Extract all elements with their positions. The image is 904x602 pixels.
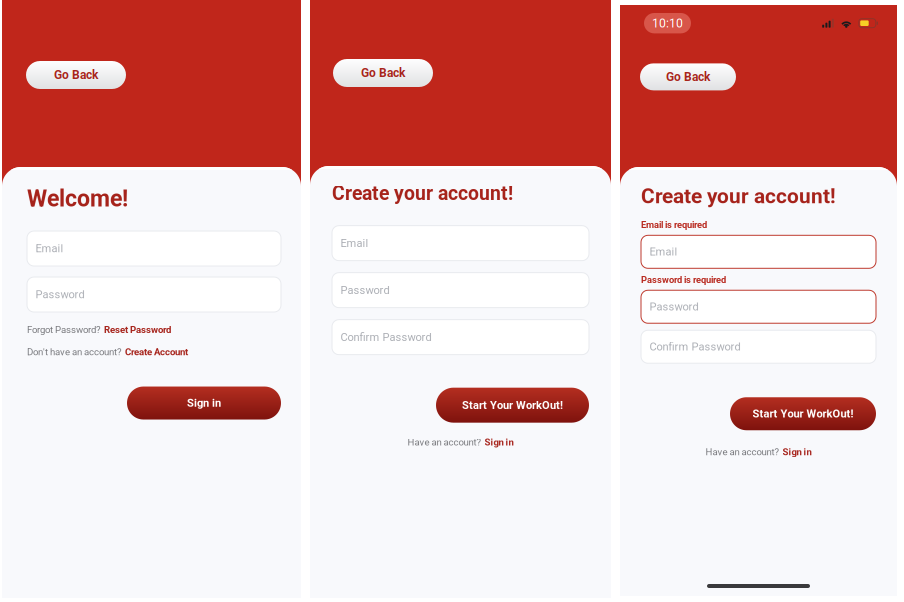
- staticText: Email: [341, 237, 369, 250]
- staticText: Password is required: [641, 274, 726, 285]
- button[interactable]: Go Back: [26, 61, 126, 89]
- staticText: Start Your WorkOut!: [752, 407, 853, 420]
- button[interactable]: Create Account: [125, 346, 188, 358]
- button[interactable]: Sign in: [782, 446, 811, 457]
- staticText: Create your account!: [641, 184, 836, 208]
- staticText: Create Account: [125, 346, 188, 358]
- staticText: Password: [341, 284, 390, 297]
- staticText: Email: [36, 242, 64, 255]
- button[interactable]: Go Back: [333, 59, 433, 87]
- staticText: Sign in: [782, 446, 811, 457]
- staticText: 10:10: [652, 16, 683, 30]
- button[interactable]: Go Back: [640, 63, 736, 90]
- staticText: Have an account?: [705, 446, 779, 457]
- staticText: Password: [36, 288, 85, 301]
- button[interactable]: Start Your WorkOut!: [730, 397, 876, 430]
- button[interactable]: Reset Password: [104, 324, 171, 335]
- staticText: Start Your WorkOut!: [462, 399, 563, 412]
- staticText: Create your account!: [332, 182, 513, 205]
- staticText: Sign in: [187, 396, 221, 409]
- staticText: Go Back: [54, 68, 98, 82]
- staticText: Have an account?: [407, 437, 481, 448]
- staticText: Email is required: [641, 219, 707, 230]
- staticText: Confirm Password: [341, 331, 432, 344]
- button[interactable]: Sign in: [484, 437, 513, 448]
- button[interactable]: Start Your WorkOut!: [436, 388, 589, 423]
- staticText: Reset Password: [104, 324, 171, 335]
- staticText: Go Back: [666, 70, 710, 84]
- staticText: Welcome!: [27, 185, 128, 212]
- button[interactable]: Sign in: [127, 386, 281, 419]
- staticText: Forgot Password?: [27, 324, 101, 335]
- staticText: Confirm Password: [650, 340, 741, 353]
- staticText: Password: [650, 300, 699, 313]
- staticText: Sign in: [484, 437, 513, 448]
- staticText: Go Back: [361, 66, 405, 80]
- staticText: Don't have an account?: [27, 346, 122, 358]
- staticText: Email: [650, 245, 678, 258]
